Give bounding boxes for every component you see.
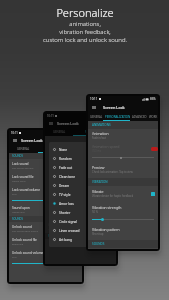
staticText: Random <box>59 157 72 161</box>
button[interactable]: Lock sound <box>9 159 82 172</box>
staticText: Play sound and lock <box>12 166 34 169</box>
staticText: Unlock sound file <box>12 238 37 242</box>
staticText: Animation speed <box>92 144 120 149</box>
button[interactable]: Vibration upon <box>45 220 116 233</box>
button[interactable]: Linen crossed <box>49 226 110 235</box>
staticText: Beginning <box>12 242 24 245</box>
staticText: Check lock animation. Tap to view <box>92 170 133 174</box>
button[interactable]: Vibration strength <box>88 201 158 222</box>
staticText: SOUNDS <box>12 217 24 221</box>
button[interactable]: Unlock sound <box>9 222 82 235</box>
staticText: 10:11 <box>47 114 54 118</box>
button[interactable]: Dream <box>49 181 110 190</box>
button[interactable]: Fade out <box>49 163 110 172</box>
staticText: ANIMATIONS <box>92 123 111 127</box>
staticText: 50% <box>12 192 17 195</box>
staticText: ADVANCED <box>132 115 147 119</box>
staticText: Dream <box>59 184 70 188</box>
button[interactable]: Lock sound volume <box>9 185 82 203</box>
staticText: VIBRATION <box>92 180 108 184</box>
staticText: Sound upon <box>12 206 30 210</box>
button[interactable]: Clean tone <box>49 172 110 181</box>
button[interactable]: PERSONALIZ... <box>73 128 116 135</box>
button[interactable]: None <box>49 145 110 154</box>
staticText: TV style <box>59 193 71 197</box>
button[interactable]: Preview <box>88 160 158 178</box>
staticText: Vibration strength <box>92 205 122 210</box>
staticText: 86% <box>150 97 156 101</box>
staticText: Clean tone <box>59 175 76 179</box>
staticText: Vibrate device for haptic feedback <box>92 194 134 198</box>
staticText: Personalize <box>56 5 114 20</box>
staticText: PERSONALIZ... <box>51 147 70 151</box>
button[interactable]: PERSONALIZ... <box>38 145 82 152</box>
staticText: WORK <box>149 115 158 119</box>
button[interactable]: Art bang <box>49 235 110 244</box>
staticText: Screen Lock <box>21 138 43 143</box>
staticText: animations and <box>48 227 65 230</box>
button[interactable]: Unlock sound file <box>9 235 82 248</box>
staticText: GENERAL <box>17 147 30 151</box>
button[interactable]: GENERAL <box>45 128 73 135</box>
button[interactable]: Shorter <box>49 208 110 217</box>
staticText: SOUNDS <box>48 234 60 238</box>
staticText: Preview <box>92 165 105 170</box>
staticText: Unlock sound volume <box>12 251 44 255</box>
staticText: Animation <box>92 131 109 136</box>
button[interactable]: PERSONALIZATION <box>104 113 131 120</box>
button[interactable]: Open navigation menu <box>88 102 100 113</box>
staticText: animations, vibration feedback, custom l… <box>43 20 127 44</box>
staticText: GENERAL <box>53 130 66 134</box>
staticText: 50 % <box>92 210 98 214</box>
button[interactable]: Random <box>49 154 110 163</box>
staticText: Unlock sound <box>12 225 32 229</box>
staticText: Gentle Song <box>12 179 26 182</box>
button[interactable]: Open navigation menu <box>9 135 20 145</box>
staticText: 10:11 <box>90 97 98 101</box>
button[interactable]: GENERAL <box>9 145 38 152</box>
button[interactable]: GENERAL <box>88 113 104 120</box>
staticText: 50% <box>12 255 17 258</box>
staticText: Fade in/out <box>92 136 106 140</box>
staticText: Lock sound volume <box>12 188 40 192</box>
button[interactable]: Animation <box>88 129 158 142</box>
button[interactable]: WORK <box>148 113 158 120</box>
staticText: Short tap <box>92 232 104 236</box>
staticText: Amor loss <box>59 202 74 206</box>
staticText: 10:11 <box>11 131 18 135</box>
staticText: Fade out <box>59 166 73 170</box>
staticText: Lock sound file <box>12 175 34 179</box>
staticText: Play sound upon unlock <box>12 229 38 232</box>
staticText: Circle signal <box>59 220 77 224</box>
button[interactable]: TV style <box>49 190 110 199</box>
button[interactable]: Sound upon <box>9 203 82 216</box>
button[interactable]: Unlock sound volume <box>9 248 82 266</box>
button[interactable]: Vibrate <box>88 186 158 201</box>
staticText: Linen crossed <box>59 229 80 233</box>
staticText: None <box>59 148 68 152</box>
button[interactable]: Animation speed <box>88 142 158 160</box>
staticText: SOUNDS <box>92 242 105 246</box>
staticText: Lock sound <box>12 162 29 166</box>
staticText: Screen Lock <box>103 105 125 110</box>
staticText: Vibrate and <box>12 210 25 213</box>
button[interactable]: ADVANCED <box>131 113 148 120</box>
button[interactable]: Open navigation menu <box>45 118 56 128</box>
staticText: PERSONALIZ... <box>85 130 104 134</box>
staticText: PERSONALIZATION <box>105 115 131 119</box>
button[interactable]: Amor loss <box>49 199 110 208</box>
staticText: SOUNDS <box>12 154 24 158</box>
button[interactable]: Lock sound file <box>9 172 82 185</box>
staticText: Art bang <box>59 238 73 242</box>
button[interactable]: Circle signal <box>49 217 110 226</box>
staticText: GENERAL <box>90 115 103 119</box>
button[interactable]: Vibration pattern <box>88 222 158 240</box>
staticText: Screen Lock <box>57 121 79 126</box>
staticText: Shorter <box>59 211 71 215</box>
staticText: Vibrate <box>92 189 104 194</box>
staticText: Vibration pattern <box>92 227 120 232</box>
